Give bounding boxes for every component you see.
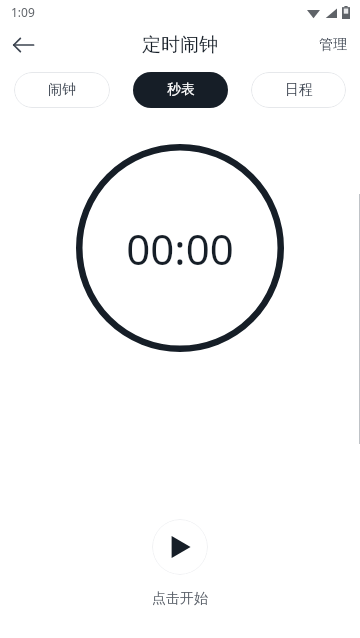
- staticText: 定时闹钟: [142, 33, 218, 57]
- staticText: 闹钟: [48, 81, 76, 99]
- staticText: 点击开始: [152, 590, 208, 608]
- staticText: 1:09: [11, 4, 35, 20]
- button[interactable]: 闹钟: [14, 72, 110, 108]
- button[interactable]: 秒表: [133, 72, 228, 108]
- button[interactable]: 日程: [251, 72, 346, 108]
- staticText: 日程: [285, 81, 313, 99]
- staticText: 管理: [319, 36, 347, 54]
- button[interactable]: Back: [0, 24, 46, 66]
- staticText: 00:00: [126, 220, 234, 277]
- staticText: 秒表: [167, 81, 195, 99]
- button[interactable]: Start: [152, 519, 208, 575]
- button[interactable]: 管理: [306, 28, 360, 62]
